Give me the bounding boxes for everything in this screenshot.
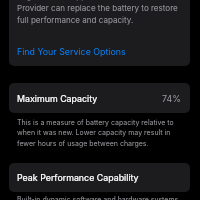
button[interactable]: Peak Performance Capability (9, 163, 190, 192)
staticText: This is a measure of battery capacity re… (17, 118, 174, 148)
staticText: Built-in dynamic software and hardware s… (17, 195, 179, 200)
staticText: Find Your Service Options (17, 46, 126, 57)
staticText: 74% (162, 93, 181, 104)
staticText: Maximum Capacity (17, 93, 98, 104)
staticText: Peak Performance Capability (17, 172, 139, 183)
staticText: degraded. An Apple Authorized Service Pr… (17, 0, 178, 25)
button[interactable]: Maximum Capacity (9, 83, 190, 113)
button[interactable]: Find Your Service Options (9, 42, 190, 61)
